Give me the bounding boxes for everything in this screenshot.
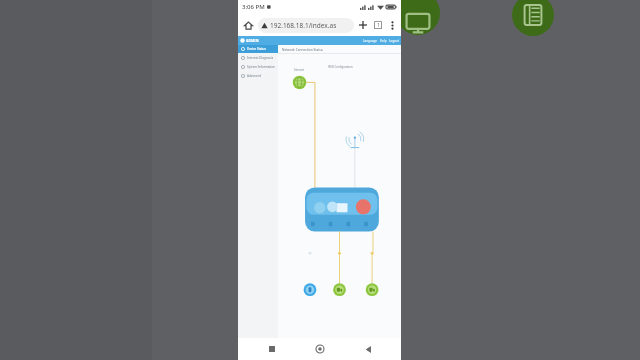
staticText: ADMIN	[246, 38, 259, 43]
button[interactable]: More options	[386, 19, 398, 31]
button[interactable]: Device Status	[238, 45, 278, 53]
button[interactable]: Tabs	[371, 18, 385, 32]
staticText: WiFi Configuration	[328, 65, 353, 69]
staticText: Advanced	[247, 74, 261, 78]
staticText: 3:06 PM	[242, 3, 265, 11]
staticText: System Information	[247, 65, 275, 69]
staticText: Device Status	[247, 47, 266, 51]
button[interactable]: Back	[355, 338, 381, 360]
button[interactable]: 192.168.18.1/index.as	[258, 18, 354, 33]
button[interactable]: Recent apps	[259, 338, 285, 360]
button[interactable]: System Information	[238, 62, 278, 71]
staticText: Network Connection Status	[282, 48, 323, 52]
button[interactable]: Advanced	[238, 71, 278, 80]
staticText: 1	[377, 22, 380, 29]
button[interactable]: Home	[241, 18, 255, 32]
staticText: Language	[363, 39, 378, 43]
button[interactable]: Internet Diagnosis	[238, 53, 278, 62]
button[interactable]: New tab	[356, 18, 370, 32]
staticText: Logout	[389, 39, 399, 43]
button[interactable]: Home	[307, 338, 333, 360]
staticText: Help	[380, 39, 387, 43]
staticText: 192.168.18.1/index.as	[270, 21, 337, 30]
staticText: Internet Diagnosis	[247, 56, 274, 60]
staticText: Internet	[294, 68, 304, 72]
